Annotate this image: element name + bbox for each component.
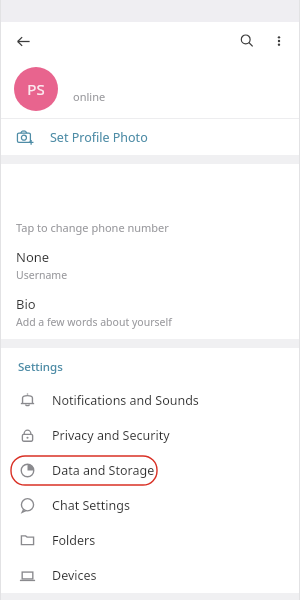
button[interactable]: Bio	[0, 295, 300, 329]
staticText: Folders	[52, 532, 96, 549]
staticText: Settings	[18, 359, 63, 375]
staticText: Username	[16, 268, 68, 282]
button[interactable]: Data and Storage	[0, 453, 300, 488]
button[interactable]: Devices	[0, 558, 300, 593]
staticText: Chat Settings	[52, 497, 130, 514]
button[interactable]: Search	[234, 28, 260, 54]
button[interactable]: Chat Settings	[0, 488, 300, 523]
staticText: Data and Storage	[52, 462, 155, 479]
staticText: None	[16, 248, 50, 266]
button[interactable]: Set Profile Photo	[0, 119, 300, 155]
staticText: Tap to change phone number	[16, 220, 169, 235]
staticText: online	[73, 89, 106, 104]
staticText: PS	[27, 79, 45, 99]
button[interactable]: Notifications and Sounds	[0, 383, 300, 418]
button[interactable]: Privacy and Security	[0, 418, 300, 453]
staticText: Set Profile Photo	[50, 129, 148, 146]
button[interactable]: Back	[10, 28, 36, 54]
button[interactable]: PS	[0, 60, 300, 118]
staticText: Devices	[52, 567, 97, 584]
button[interactable]: More options	[266, 28, 292, 54]
button[interactable]: Folders	[0, 523, 300, 558]
staticText: Notifications and Sounds	[52, 392, 199, 409]
staticText: Privacy and Security	[52, 427, 170, 444]
staticText: Add a few words about yourself	[16, 315, 172, 329]
staticText: Bio	[16, 295, 36, 313]
button[interactable]: None	[0, 248, 300, 282]
